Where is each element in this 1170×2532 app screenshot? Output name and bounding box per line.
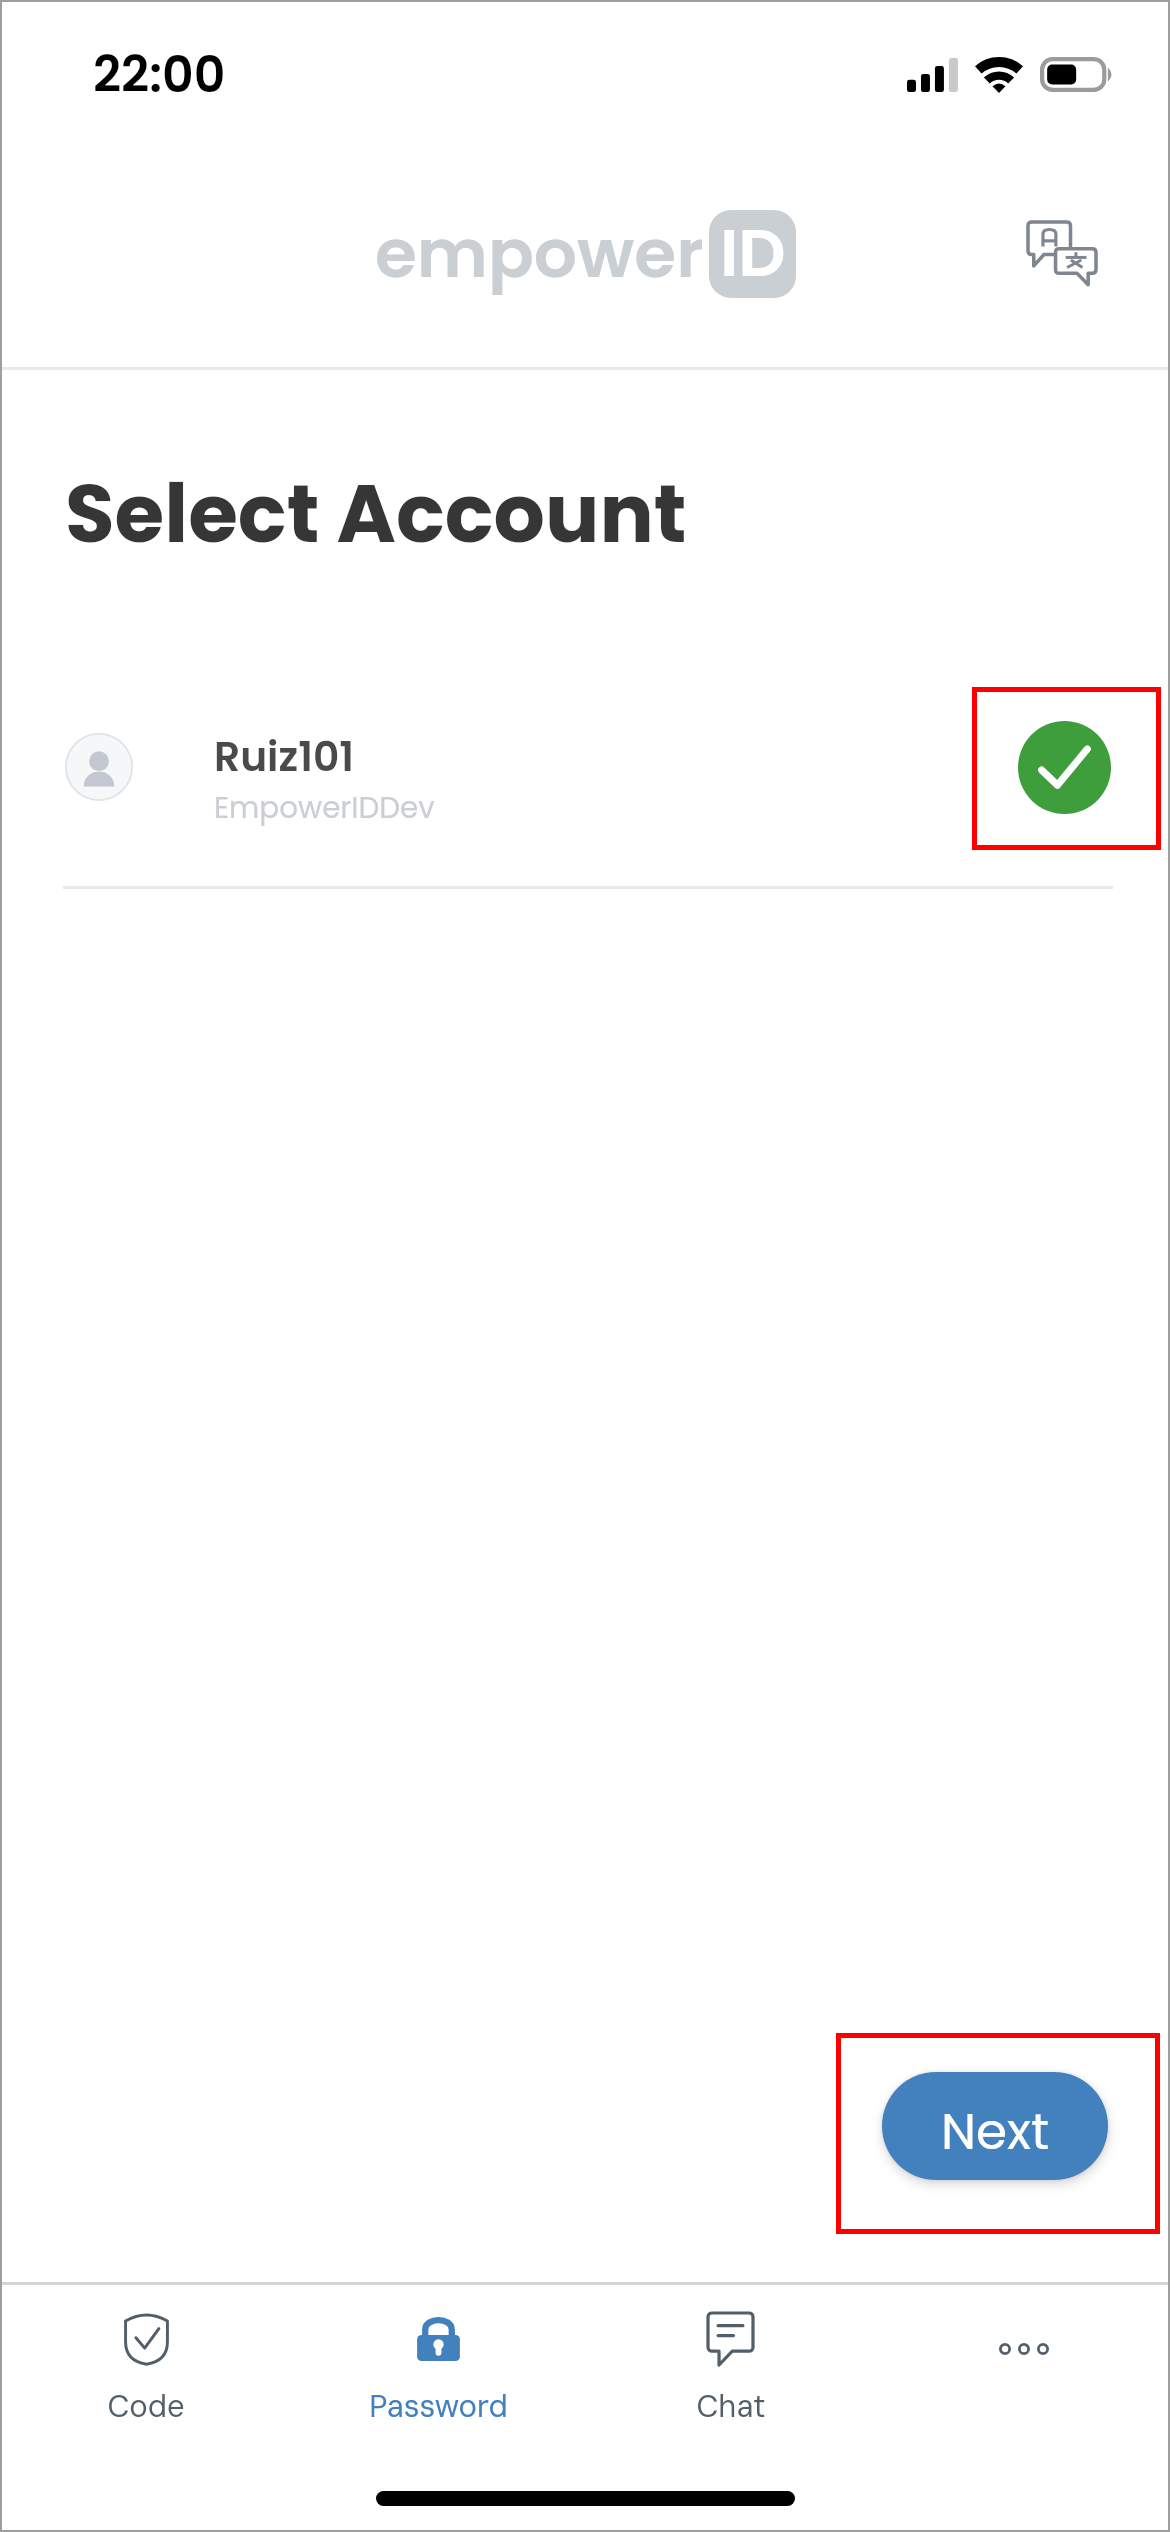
button[interactable]: Code bbox=[0, 2285, 292, 2444]
staticText: Next bbox=[941, 2097, 1050, 2167]
staticText: Select Account bbox=[65, 457, 687, 570]
button[interactable]: Change language bbox=[996, 191, 1128, 323]
button[interactable]: Password bbox=[292, 2285, 584, 2444]
button[interactable]: Account selected bbox=[1018, 721, 1111, 814]
button[interactable]: Chat bbox=[584, 2285, 877, 2444]
staticText: ID bbox=[720, 210, 786, 295]
button[interactable]: More options bbox=[877, 2285, 1170, 2444]
staticText: EmpowerIDDev bbox=[214, 787, 435, 828]
button[interactable]: Next bbox=[882, 2072, 1108, 2180]
staticText: Chat bbox=[696, 2386, 766, 2426]
staticText: Ruiz101 bbox=[214, 728, 355, 785]
button[interactable]: Ruiz101 bbox=[0, 674, 1170, 860]
staticText: empower bbox=[375, 206, 704, 301]
staticText: Code bbox=[107, 2386, 185, 2426]
staticText: 22:00 bbox=[93, 41, 226, 110]
staticText: Password bbox=[369, 2386, 508, 2426]
